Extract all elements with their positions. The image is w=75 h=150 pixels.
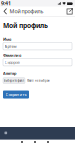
staticText: Мой профиль (3, 21, 48, 30)
button[interactable]: Back (1, 6, 10, 16)
staticText: 9:41 (1, 0, 11, 7)
staticText: Выберите файл (3, 79, 24, 82)
button[interactable]: Home (32, 139, 38, 145)
staticText: Сохранить (5, 92, 26, 97)
staticText: Мой профиль (9, 8, 43, 15)
staticText: Артем (5, 43, 17, 49)
staticText: Файл не выбран (27, 79, 50, 82)
button[interactable]: Recents (45, 139, 51, 145)
button[interactable]: Menu (3, 130, 9, 136)
button[interactable]: Back (19, 139, 25, 145)
staticText: Имя (3, 36, 11, 42)
button[interactable]: Open in new window (65, 6, 74, 16)
staticText: Аватар (3, 71, 17, 76)
button[interactable]: Выберите файл (3, 78, 25, 83)
staticText: Сидоров (5, 59, 20, 65)
button[interactable]: Сохранить (3, 90, 29, 98)
button[interactable]: Мой профиль (9, 6, 49, 16)
staticText: Фамилия (3, 53, 21, 58)
